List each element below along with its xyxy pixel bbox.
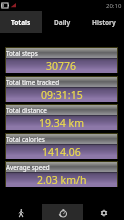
staticText: Total calories [6,135,45,144]
button[interactable]: Totals [0,11,42,33]
staticText: 20:10 [106,2,122,10]
button[interactable]: Total steps [6,47,117,73]
staticText: History [92,18,116,27]
staticText: 30776 [46,59,77,73]
staticText: Total distance [6,106,47,115]
button[interactable]: Settings [83,204,124,220]
staticText: 09:31:15 [41,88,83,102]
button[interactable]: Total time tracked [6,76,117,102]
staticText: Daily [54,18,71,27]
button[interactable]: Average speed [6,161,117,187]
button[interactable]: History [83,11,124,33]
staticText: 2.03 km/h [37,173,87,187]
button[interactable]: Total calories [6,133,117,159]
staticText: Totals [11,18,31,27]
button[interactable]: Stopwatch [42,204,83,220]
button[interactable]: Daily [42,11,83,33]
button[interactable]: Total distance [6,104,117,130]
staticText: Total time tracked [6,78,60,87]
button[interactable]: Activity [0,204,42,220]
staticText: 1414.06 [42,145,81,159]
staticText: Average speed [6,163,50,172]
staticText: 19.34 km [39,116,84,130]
staticText: Total steps [6,49,38,58]
